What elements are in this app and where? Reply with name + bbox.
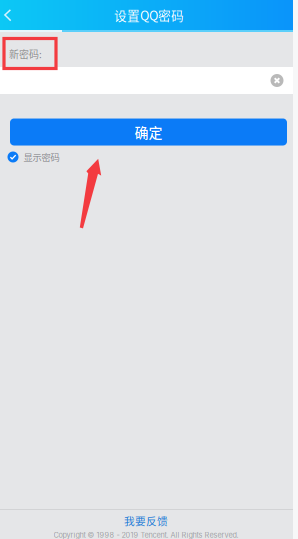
staticText: 显示密码 [23,150,59,164]
button[interactable]: 确定 [10,118,287,145]
button[interactable]: 显示密码 [0,145,298,168]
button[interactable]: Back [0,0,30,30]
button[interactable]: Clear text [260,67,294,94]
staticText: 设置QQ密码 [114,6,184,24]
staticText: 新密码: [9,47,42,61]
staticText: Copyright © 1998 - 2019 Tencent. All Rig… [53,531,238,539]
button[interactable]: 我要反馈 [0,510,298,531]
staticText: 确定 [134,122,162,142]
staticText: 我要反馈 [124,513,168,528]
